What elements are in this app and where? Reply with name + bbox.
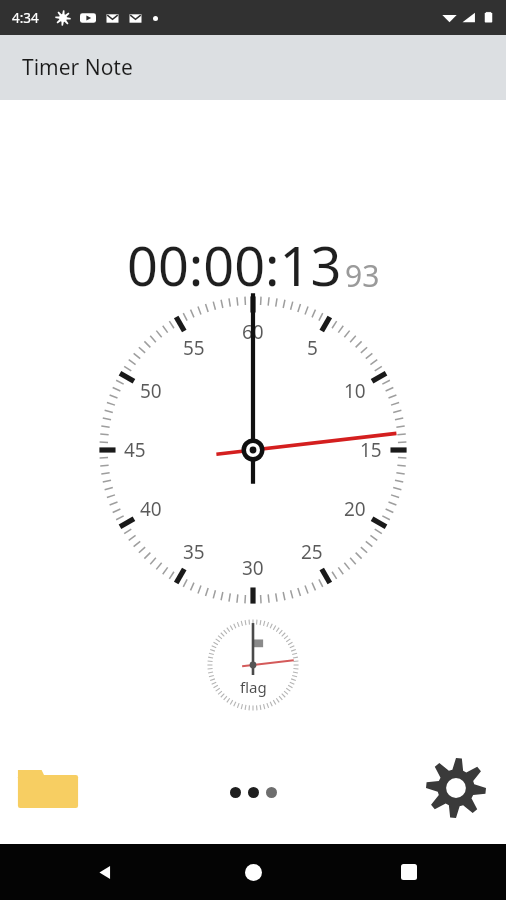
button[interactable]: More options [230, 787, 277, 798]
staticText: 00:00:13 [127, 228, 342, 302]
button[interactable]: Back [82, 849, 128, 895]
staticText: 50 [140, 378, 162, 404]
staticText: 45 [124, 437, 146, 463]
staticText: 30 [242, 555, 264, 581]
staticText: 40 [140, 496, 162, 522]
staticText: flag [240, 677, 267, 697]
button[interactable]: Home [230, 849, 276, 895]
button[interactable]: Recent apps [386, 849, 432, 895]
staticText: 10 [344, 378, 366, 404]
staticText: 25 [301, 539, 323, 565]
staticText: 55 [183, 335, 205, 361]
staticText: 60 [242, 319, 264, 345]
staticText: 4:34 [12, 9, 39, 27]
staticText: 20 [344, 496, 366, 522]
staticText: 5 [307, 335, 318, 361]
staticText: Timer Note [22, 53, 133, 82]
staticText: 35 [183, 539, 205, 565]
staticText: 15 [360, 437, 382, 463]
staticText: 93 [345, 255, 380, 296]
button[interactable]: Open notes folder [10, 750, 86, 826]
button[interactable]: Settings [418, 750, 494, 826]
